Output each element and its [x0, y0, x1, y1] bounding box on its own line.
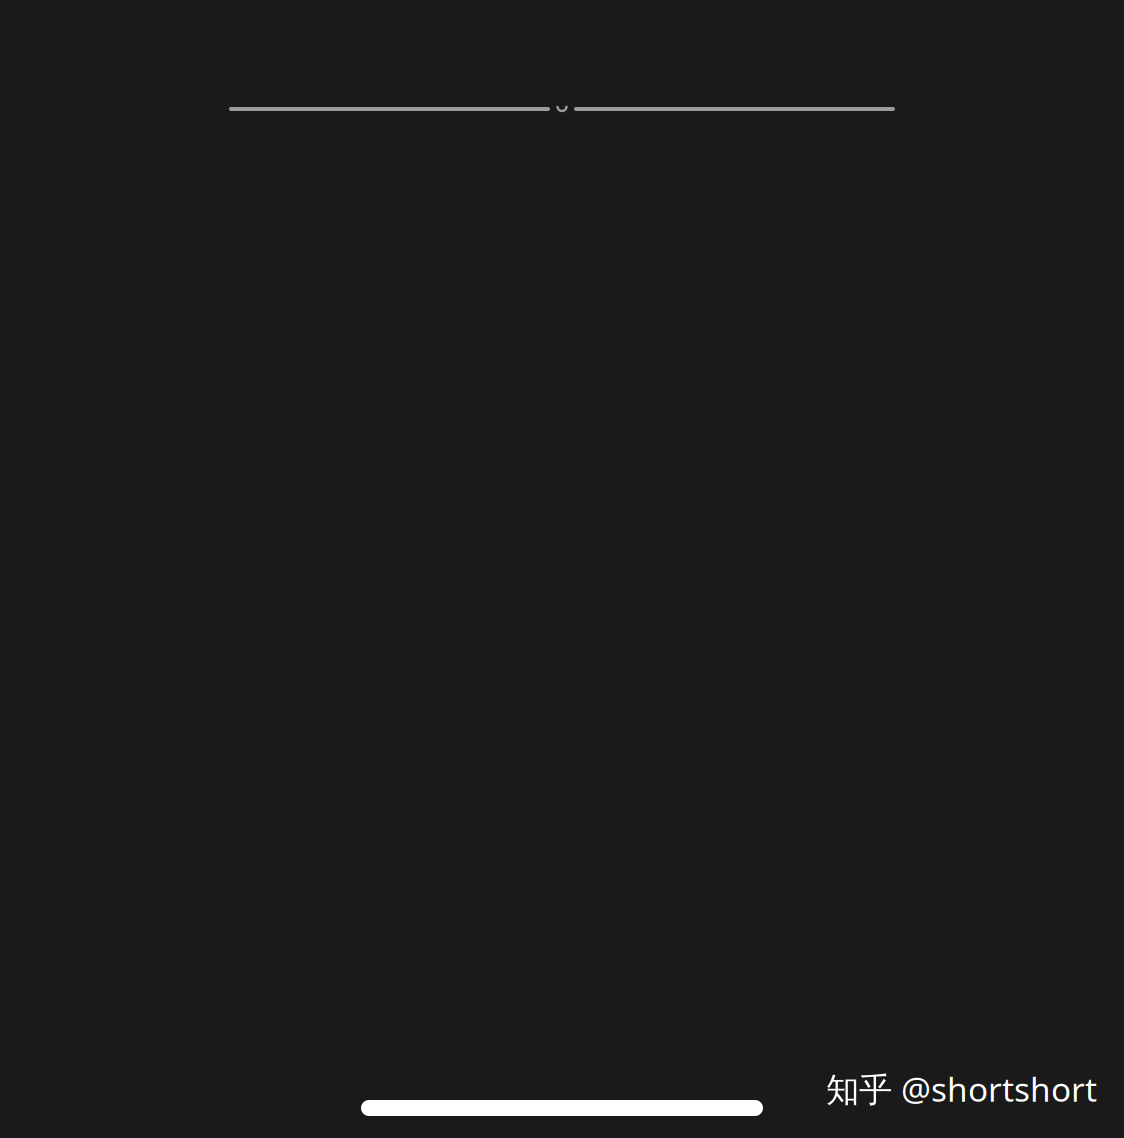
staticText: 知乎 @shortshort [826, 1067, 1097, 1111]
button[interactable]: Scrubber [229, 89, 895, 129]
